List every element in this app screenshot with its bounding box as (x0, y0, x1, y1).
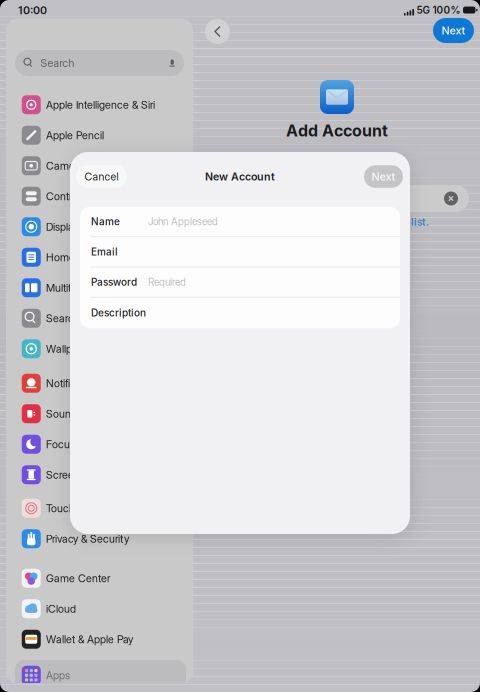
staticText: list. (411, 216, 429, 228)
staticText: Search (40, 56, 74, 69)
staticText: iCloud (46, 602, 76, 615)
staticText: Game Center (46, 572, 110, 585)
staticText: Next (441, 24, 465, 37)
button[interactable]: Touch ID & Passcode (15, 493, 186, 523)
button[interactable]: Search (15, 303, 186, 333)
staticText: Password (91, 276, 137, 288)
button[interactable]: Multitasking & Gestures (15, 272, 186, 303)
staticText: Name (91, 216, 120, 228)
staticText: Search (46, 312, 80, 325)
button[interactable]: Wallpaper (15, 333, 186, 364)
button[interactable]: Apps (15, 660, 186, 690)
button[interactable]: Cancel (76, 165, 127, 188)
staticText: Email (91, 246, 118, 258)
button[interactable]: Home Screen & App Library (15, 242, 186, 272)
button[interactable]: Next (433, 18, 474, 43)
button[interactable]: Notifications (15, 368, 186, 398)
staticText: Wallpaper (46, 342, 93, 355)
staticText: Focus (46, 438, 75, 451)
staticText: Camera (46, 159, 84, 172)
staticText: Touch ID & Passcode (46, 502, 145, 515)
staticText: John Appleseed (148, 216, 218, 228)
button[interactable]: Game Center (15, 563, 186, 593)
button[interactable]: Search (15, 50, 184, 76)
staticText: Screen Time (46, 468, 107, 481)
staticText: Cancel (84, 170, 118, 183)
staticText: 5G 100% (416, 4, 460, 16)
staticText: Next (371, 170, 395, 183)
button[interactable]: Apple Intelligence & Siri (15, 89, 186, 120)
staticText: Home Screen & App Library (46, 251, 172, 264)
button[interactable]: Wallet & Apple Pay (15, 624, 186, 654)
button[interactable]: Focus (15, 429, 186, 459)
button[interactable]: Next (364, 165, 403, 188)
staticText: Apple Pencil (46, 129, 104, 142)
staticText: Multitasking & Gestures (46, 281, 155, 294)
staticText: Privacy & Security (46, 532, 129, 545)
button[interactable]: Control Center (15, 181, 186, 211)
staticText: Wallet & Apple Pay (46, 633, 133, 646)
staticText: Display & Brightness (46, 220, 139, 233)
button[interactable]: Screen Time (15, 459, 186, 490)
button[interactable]: Apple Pencil (15, 120, 186, 150)
staticText: Control Center (46, 190, 115, 203)
button[interactable]: Privacy & Security (15, 523, 186, 554)
button[interactable]: Back (205, 19, 230, 44)
button[interactable]: Display & Brightness (15, 211, 186, 242)
staticText: 10:00 (18, 4, 47, 17)
staticText: Notifications (46, 377, 104, 390)
button[interactable]: Camera (15, 150, 186, 181)
staticText: Required (148, 276, 186, 288)
button[interactable]: Sounds (15, 398, 186, 429)
staticText: Description (91, 307, 146, 319)
staticText: New Account (205, 170, 275, 183)
staticText: Apps (46, 669, 70, 682)
staticText: Sounds (46, 407, 82, 420)
staticText: Add Account (286, 121, 388, 140)
staticText: Apple Intelligence & Siri (46, 98, 155, 111)
button[interactable]: iCloud (15, 593, 186, 624)
